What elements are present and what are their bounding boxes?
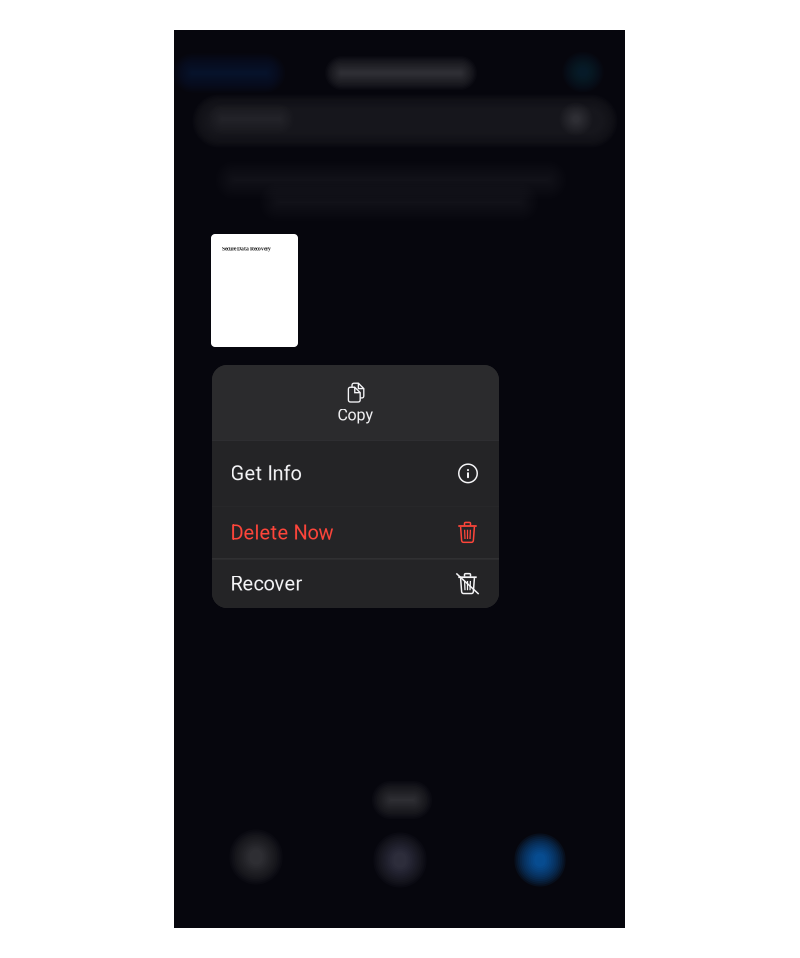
- button[interactable]: Recover: [212, 559, 499, 608]
- button[interactable]: Copy: [212, 365, 499, 440]
- button[interactable]: Delete Now: [212, 507, 499, 558]
- staticText: Get Info: [230, 462, 301, 485]
- staticText: Delete Now: [230, 521, 333, 544]
- staticText: Copy: [337, 406, 373, 424]
- button[interactable]: Get Info: [212, 441, 499, 506]
- staticText: Recover: [230, 572, 302, 595]
- staticText: Secure Data Recovery: [222, 246, 271, 252]
